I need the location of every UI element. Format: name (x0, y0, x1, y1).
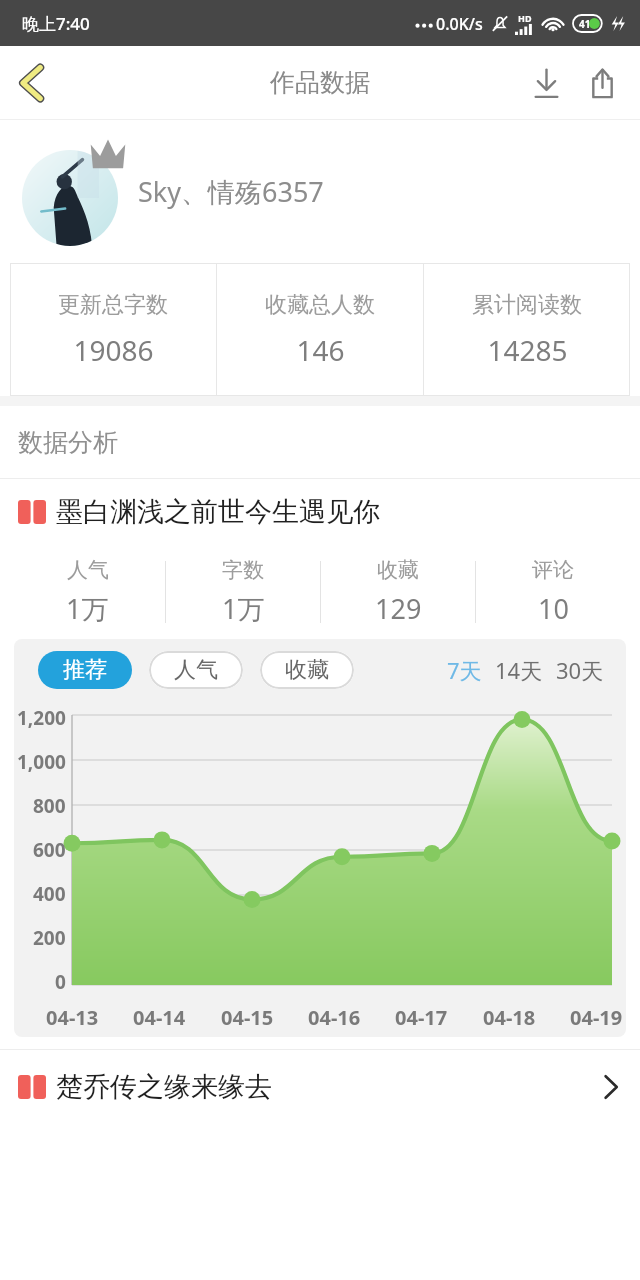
staticText: 1,000 (17, 749, 66, 775)
staticText: 04-19 (570, 1004, 623, 1031)
staticText: 收藏总人数 (265, 291, 375, 319)
button[interactable]: 收藏总人数 (217, 263, 423, 396)
button[interactable]: Back (0, 52, 62, 114)
staticText: 1,200 (17, 705, 66, 731)
staticText: 04-14 (133, 1004, 186, 1031)
staticText: 1万 (222, 590, 265, 627)
staticText: 收藏 (285, 656, 329, 684)
staticText: Sky、情殇6357 (138, 173, 324, 210)
button[interactable]: 7天 (447, 655, 482, 685)
staticText: 1万 (66, 590, 109, 627)
staticText: 数据分析 (18, 427, 118, 458)
staticText: 200 (33, 925, 66, 951)
button[interactable]: 人气 (149, 651, 243, 689)
button[interactable]: Share (574, 55, 630, 111)
staticText: 人气 (67, 557, 109, 583)
button[interactable]: 累计阅读数 (424, 263, 630, 396)
button[interactable]: 更新总字数 (10, 263, 216, 396)
staticText: 楚乔传之缘来缘去 (56, 1070, 602, 1104)
staticText: 04-18 (483, 1004, 536, 1031)
staticText: 800 (33, 793, 66, 819)
button[interactable]: Sky、情殇6357 (0, 120, 640, 263)
button[interactable]: 收藏 (321, 545, 475, 639)
staticText: 收藏 (377, 557, 419, 583)
button[interactable]: 人气 (10, 545, 165, 639)
staticText: 04-13 (46, 1004, 99, 1031)
staticText: 字数 (222, 557, 264, 583)
staticText: 作品数据 (270, 67, 370, 98)
staticText: 0.0K/s (436, 13, 483, 35)
staticText: 评论 (532, 557, 574, 583)
button[interactable]: 收藏 (260, 651, 354, 689)
staticText: 04-15 (221, 1004, 274, 1031)
staticText: 129 (375, 590, 422, 627)
staticText: 600 (33, 837, 66, 863)
staticText: 更新总字数 (58, 291, 168, 319)
button[interactable]: 推荐 (38, 651, 132, 689)
staticText: HD (518, 12, 532, 24)
staticText: 146 (296, 331, 345, 369)
staticText: 10 (538, 590, 569, 627)
staticText: 墨白渊浅之前世今生遇见你 (56, 495, 620, 529)
staticText: 人气 (174, 656, 218, 684)
staticText: 400 (33, 881, 66, 907)
button[interactable]: 14天 (495, 655, 543, 685)
staticText: 14285 (487, 331, 568, 369)
staticText: 19086 (73, 331, 154, 369)
staticText: 晚上7:40 (22, 12, 90, 35)
staticText: 累计阅读数 (472, 291, 582, 319)
staticText: 推荐 (63, 656, 107, 684)
staticText: 41 (579, 17, 591, 31)
button[interactable]: 30天 (556, 655, 604, 685)
button[interactable]: Download (518, 55, 574, 111)
button[interactable]: 楚乔传之缘来缘去 (0, 1050, 640, 1124)
staticText: 0 (55, 969, 66, 995)
button[interactable]: 字数 (166, 545, 320, 639)
staticText: 04-17 (395, 1004, 448, 1031)
button[interactable]: 评论 (476, 545, 630, 639)
staticText: 04-16 (308, 1004, 361, 1031)
button[interactable]: 墨白渊浅之前世今生遇见你 (0, 479, 640, 545)
